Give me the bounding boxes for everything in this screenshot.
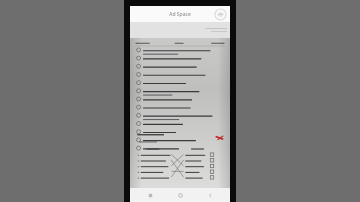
button[interactable] (130, 38, 230, 188)
button[interactable]: Home (170, 188, 190, 202)
button[interactable]: Ad logo (214, 8, 227, 21)
button[interactable]: Recent apps (140, 188, 160, 202)
button[interactable]: Back (200, 188, 220, 202)
button[interactable]: Ad Space (130, 6, 230, 22)
staticText: Ad Space (169, 11, 191, 18)
